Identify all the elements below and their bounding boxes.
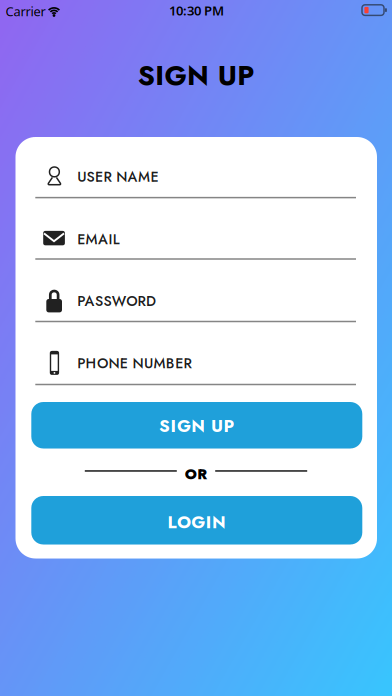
button[interactable]: SIGN UP: [31, 402, 362, 448]
staticText: PHONE NUMBER: [77, 353, 192, 374]
staticText: PASSWORD: [77, 291, 156, 311]
button[interactable]: LOGIN: [31, 496, 362, 544]
staticText: Carrier: [5, 2, 45, 20]
staticText: SIGN UP: [138, 55, 254, 95]
staticText: SIGN UP: [159, 414, 234, 438]
staticText: EMAIL: [77, 229, 120, 249]
staticText: USER NAME: [77, 166, 158, 187]
staticText: 10:30 PM: [169, 1, 224, 19]
staticText: LOGIN: [167, 510, 226, 535]
staticText: OR: [185, 463, 207, 485]
